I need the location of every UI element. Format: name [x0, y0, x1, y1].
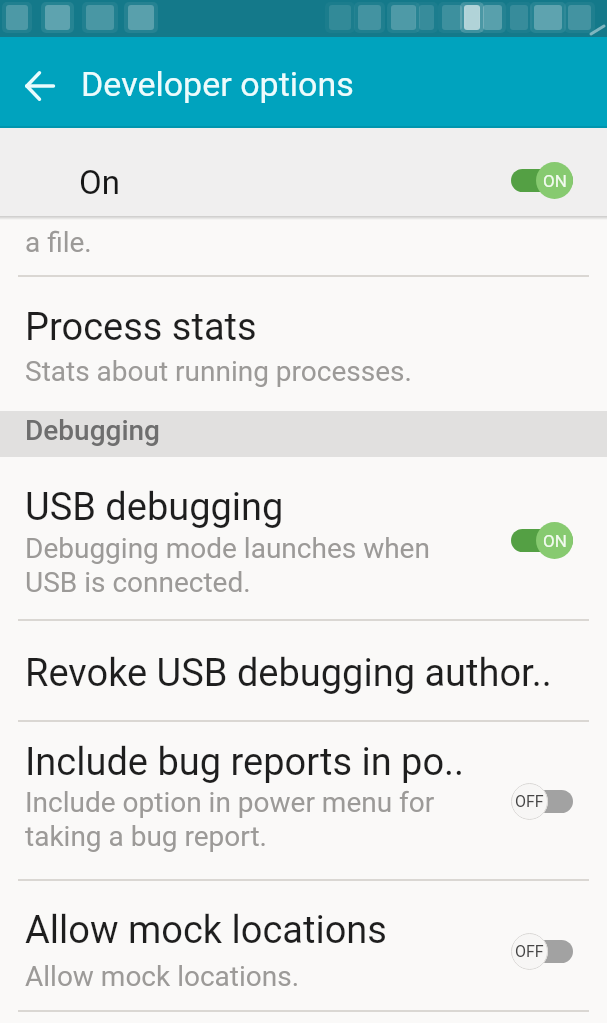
- staticText: Include bug reports in po..: [25, 740, 465, 785]
- staticText: Stats about running processes.: [25, 355, 412, 388]
- button[interactable]: ON: [511, 161, 573, 199]
- staticText: OFF: [515, 792, 544, 811]
- staticText: Developer options: [81, 64, 354, 104]
- staticText: Include option in power menu for taking …: [25, 786, 435, 853]
- button[interactable]: Process stats: [0, 277, 607, 411]
- button[interactable]: ON: [511, 521, 573, 559]
- staticText: Debugging mode launches when USB is conn…: [25, 532, 430, 599]
- staticText: Allow mock locations: [25, 908, 387, 953]
- staticText: On: [79, 163, 120, 202]
- button[interactable]: OFF: [511, 932, 573, 970]
- staticText: Allow mock locations.: [25, 960, 300, 993]
- button[interactable]: a file.: [0, 220, 607, 275]
- button[interactable]: Revoke USB debugging author..: [0, 621, 607, 720]
- button[interactable]: Include bug reports in po..: [0, 722, 607, 879]
- button[interactable]: On: [0, 128, 607, 216]
- staticText: USB debugging: [25, 485, 284, 530]
- staticText: a file.: [25, 226, 92, 259]
- button[interactable]: Allow mock locations: [0, 881, 607, 1010]
- button[interactable]: [23, 69, 57, 103]
- staticText: OFF: [515, 942, 544, 961]
- staticText: Revoke USB debugging author..: [25, 651, 552, 696]
- button[interactable]: USB debugging: [0, 457, 607, 619]
- staticText: Debugging: [25, 414, 160, 447]
- button[interactable]: OFF: [511, 782, 573, 820]
- staticText: ON: [543, 531, 567, 551]
- staticText: Process stats: [25, 305, 257, 350]
- staticText: ON: [543, 171, 567, 191]
